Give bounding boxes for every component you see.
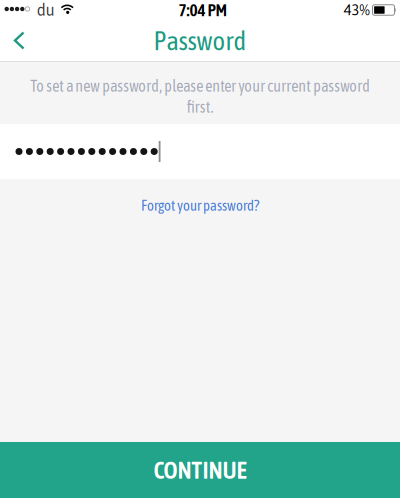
button[interactable]: Back xyxy=(0,22,26,58)
button[interactable]: Password xyxy=(0,124,400,179)
button[interactable]: CONTINUE xyxy=(0,442,400,498)
button[interactable]: Forgot your password? xyxy=(141,197,259,214)
staticText: CONTINUE xyxy=(153,456,246,484)
staticText: To set a new password, please enter your… xyxy=(30,77,370,116)
staticText: Password xyxy=(153,25,246,56)
staticText: 7:04 PM xyxy=(178,0,227,20)
staticText: 43% xyxy=(343,2,369,18)
staticText: Forgot your password? xyxy=(141,197,259,214)
staticText: du xyxy=(37,1,55,19)
